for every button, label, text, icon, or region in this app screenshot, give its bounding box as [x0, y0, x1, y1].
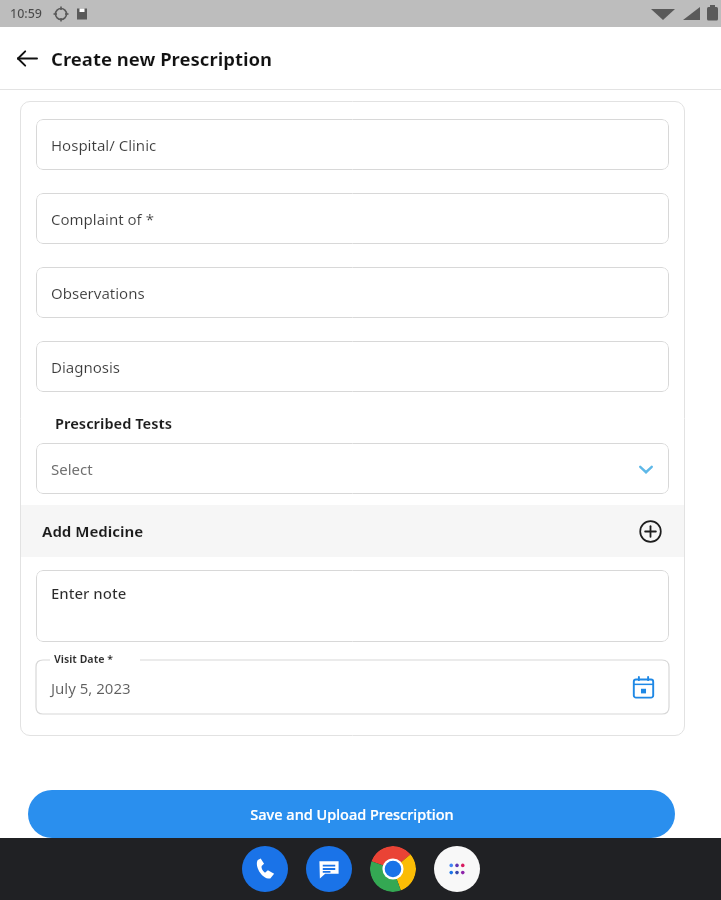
button[interactable]: Phone: [242, 846, 288, 892]
button[interactable]: Complaint of *: [36, 193, 669, 244]
button[interactable]: Messages: [306, 846, 352, 892]
staticText: Select: [51, 459, 93, 479]
button[interactable]: Save and Upload Prescription: [28, 790, 675, 838]
button[interactable]: Chrome: [370, 846, 416, 892]
staticText: July 5, 2023: [51, 678, 131, 698]
button[interactable]: Observations: [36, 267, 669, 318]
button[interactable]: Diagnosis: [36, 341, 669, 392]
button[interactable]: Visit Date *: [36, 652, 669, 714]
button[interactable]: Pick date: [630, 674, 656, 700]
staticText: Visit Date *: [54, 652, 113, 666]
button[interactable]: Add medicine: [637, 518, 663, 544]
button[interactable]: Add Medicine: [20, 505, 685, 557]
staticText: Complaint of *: [51, 209, 154, 229]
staticText: Diagnosis: [51, 357, 121, 377]
staticText: Hospital/ Clinic: [51, 135, 157, 155]
staticText: Observations: [51, 283, 145, 303]
staticText: 10:59: [10, 5, 43, 22]
staticText: Save and Upload Prescription: [250, 804, 454, 824]
staticText: Enter note: [51, 583, 127, 603]
staticText: Add Medicine: [42, 521, 144, 541]
button[interactable]: Hospital/ Clinic: [36, 119, 669, 170]
staticText: Prescribed Tests: [55, 413, 173, 433]
button[interactable]: All apps: [434, 846, 480, 892]
staticText: Create new Prescription: [51, 46, 273, 71]
button[interactable]: Back: [8, 39, 46, 77]
button[interactable]: Enter note: [36, 570, 669, 642]
button[interactable]: Select: [36, 443, 669, 494]
